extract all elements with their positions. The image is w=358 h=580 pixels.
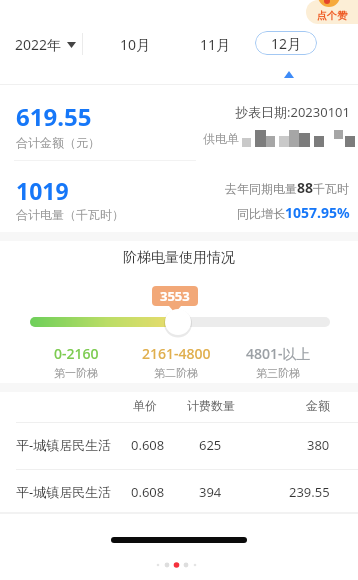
staticText: 0.608 (131, 436, 165, 454)
staticText: 计费数量 (187, 398, 235, 413)
button[interactable]: 点个赞 (306, 0, 358, 24)
staticText: 同比增长1057.95% (237, 203, 350, 222)
staticText: 第三阶梯 (256, 366, 300, 380)
button[interactable]: 平-城镇居民生活 (0, 483, 358, 501)
staticText: 380 (307, 436, 330, 454)
staticText: 供电单 (203, 131, 239, 146)
staticText: 平-城镇居民生活 (16, 436, 112, 454)
staticText: 4801-以上 (246, 344, 311, 363)
staticText: 12月 (271, 34, 302, 53)
button[interactable]: 12月 (255, 31, 317, 55)
staticText: 合计电量（千瓦时） (16, 207, 124, 222)
staticText: 去年同期电量88千瓦时 (225, 178, 350, 197)
staticText: 平-城镇居民生活 (16, 483, 112, 501)
staticText: 3553 (160, 287, 190, 305)
button[interactable]: 10月 (110, 30, 160, 58)
staticText: 单价 (133, 398, 157, 413)
staticText: 1019 (16, 175, 69, 206)
staticText: 239.55 (289, 483, 330, 501)
staticText: 2161-4800 (142, 344, 211, 363)
staticText: 0.608 (131, 483, 165, 501)
staticText: 第一阶梯 (54, 366, 98, 380)
button[interactable]: 平-城镇居民生活 (0, 436, 358, 454)
staticText: 合计金额（元） (16, 135, 100, 150)
staticText: 抄表日期:20230101 (235, 103, 350, 121)
staticText: 2022年 (15, 35, 62, 54)
staticText: 394 (199, 483, 222, 501)
staticText: 625 (199, 436, 222, 454)
staticText: 第二阶梯 (154, 366, 198, 380)
staticText: 点个赞 (317, 9, 347, 22)
staticText: 阶梯电量使用情况 (123, 249, 235, 267)
staticText: 619.55 (16, 100, 92, 133)
button[interactable]: 11月 (190, 30, 240, 58)
staticText: 金额 (306, 398, 330, 413)
staticText: 11月 (200, 35, 231, 54)
staticText: 10月 (120, 35, 151, 54)
staticText: 0-2160 (54, 344, 99, 363)
button[interactable]: 2022年 (15, 32, 90, 56)
